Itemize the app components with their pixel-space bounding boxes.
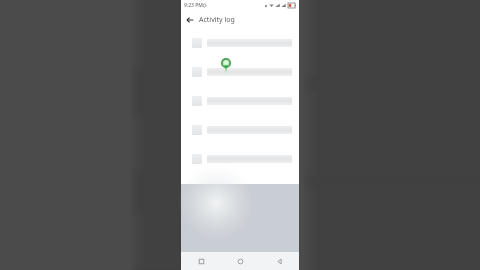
button[interactable]: [181, 95, 299, 106]
button[interactable]: Back: [184, 14, 196, 26]
button[interactable]: [181, 37, 299, 48]
button[interactable]: Recent apps: [181, 252, 221, 270]
button[interactable]: [181, 66, 299, 77]
staticText: Activity log: [199, 15, 235, 25]
button[interactable]: [181, 153, 299, 164]
button[interactable]: Back: [260, 252, 299, 270]
button[interactable]: Home: [221, 252, 260, 270]
button[interactable]: [181, 124, 299, 135]
staticText: 9:23 PM: [184, 2, 203, 9]
